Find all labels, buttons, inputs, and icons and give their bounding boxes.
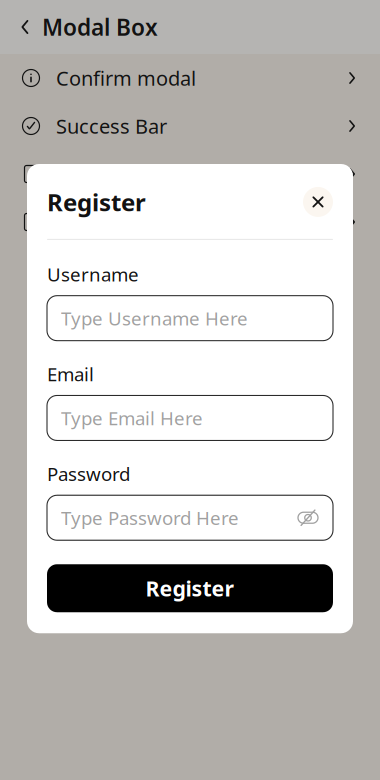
staticText: Modal Box [42,12,158,42]
button[interactable]: Back [8,0,42,54]
staticText: Password [47,461,130,486]
button[interactable]: Confirm modal [0,54,380,102]
staticText: Type Username Here [61,306,248,331]
button[interactable]: Register [47,564,333,612]
staticText: Form modal [56,209,169,235]
staticText: Username [47,262,139,287]
staticText: Register [145,574,234,602]
staticText: Register [47,186,146,218]
button[interactable]: Show password [295,505,321,531]
button[interactable]: Prompt modal [0,150,380,198]
staticText: Success Bar [56,113,167,139]
button[interactable]: Success Bar [0,102,380,150]
button[interactable]: Close [303,187,333,217]
staticText: Type Email Here [61,406,203,430]
staticText: Prompt modal [56,161,190,187]
staticText: Confirm modal [56,65,196,91]
staticText: Type Password Here [61,505,239,530]
button[interactable]: Form modal [0,198,380,246]
staticText: Email [47,362,94,386]
